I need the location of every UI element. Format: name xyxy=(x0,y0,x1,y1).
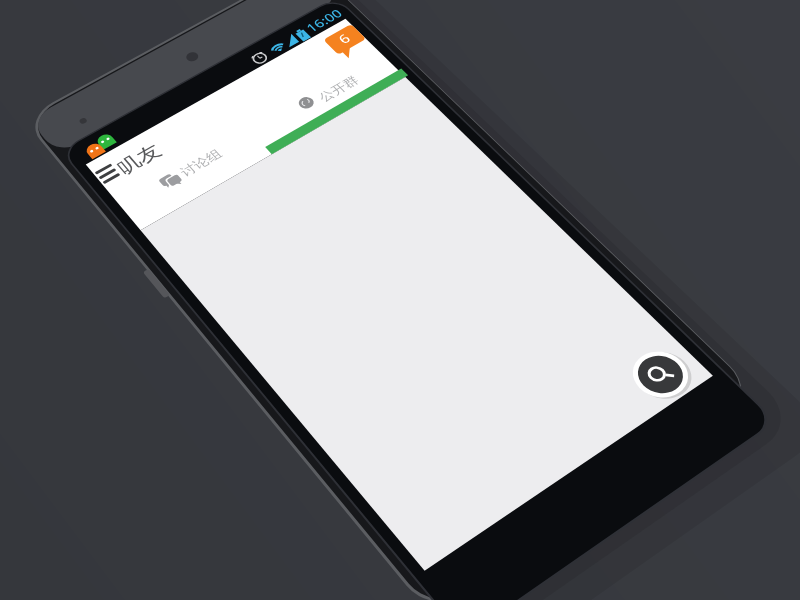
button[interactable] xyxy=(282,62,397,124)
button[interactable] xyxy=(150,135,265,197)
button[interactable] xyxy=(627,347,683,403)
button[interactable] xyxy=(92,155,130,193)
